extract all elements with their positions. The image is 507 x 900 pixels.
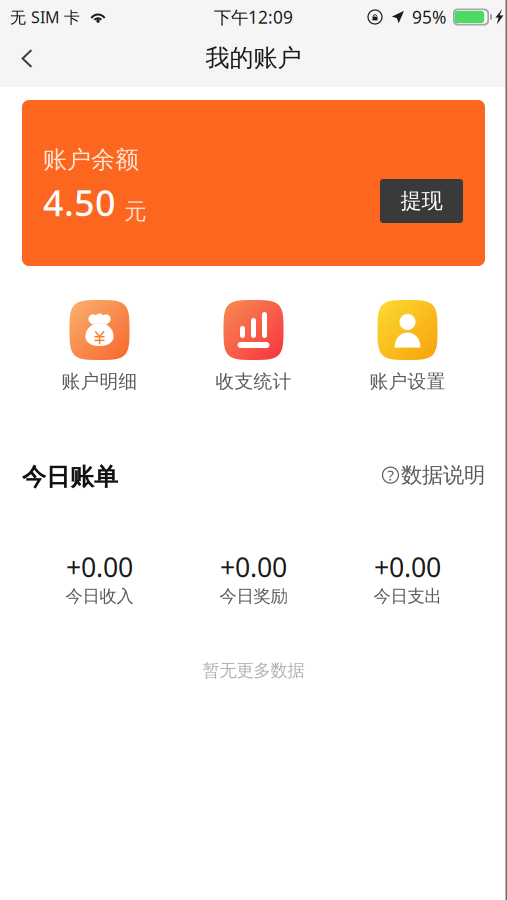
staticText: 提现 xyxy=(400,188,442,214)
staticText: 暂无更多数据 xyxy=(202,660,304,681)
staticText: 下午12:09 xyxy=(214,5,293,28)
button[interactable]: 账户明细 xyxy=(22,300,176,400)
staticText: 账户余额 xyxy=(43,145,139,174)
button[interactable]: 收支统计 xyxy=(176,300,330,400)
button[interactable]: 账户设置 xyxy=(330,300,484,400)
staticText: 95% xyxy=(412,5,446,28)
staticText: 无 SIM 卡 xyxy=(10,6,80,28)
button[interactable]: 提现 xyxy=(380,179,463,223)
staticText: 账户明细 xyxy=(61,370,137,393)
staticText: 4.50 xyxy=(43,178,116,226)
staticText: +0.00 xyxy=(66,549,133,585)
button[interactable]: 返回 xyxy=(0,34,52,87)
staticText: 收支统计 xyxy=(215,370,291,393)
staticText: +0.00 xyxy=(220,549,287,585)
staticText: 今日收入 xyxy=(65,586,133,607)
staticText: 今日账单 xyxy=(22,462,118,492)
staticText: ? xyxy=(387,465,393,485)
staticText: 元 xyxy=(124,197,147,225)
button[interactable]: ? xyxy=(374,462,485,492)
staticText: +0.00 xyxy=(374,549,441,585)
staticText: 今日奖励 xyxy=(219,586,287,607)
staticText: 今日支出 xyxy=(373,586,441,607)
staticText: 账户设置 xyxy=(369,370,445,393)
staticText: 数据说明 xyxy=(401,462,485,488)
staticText: 我的账户 xyxy=(205,43,301,73)
